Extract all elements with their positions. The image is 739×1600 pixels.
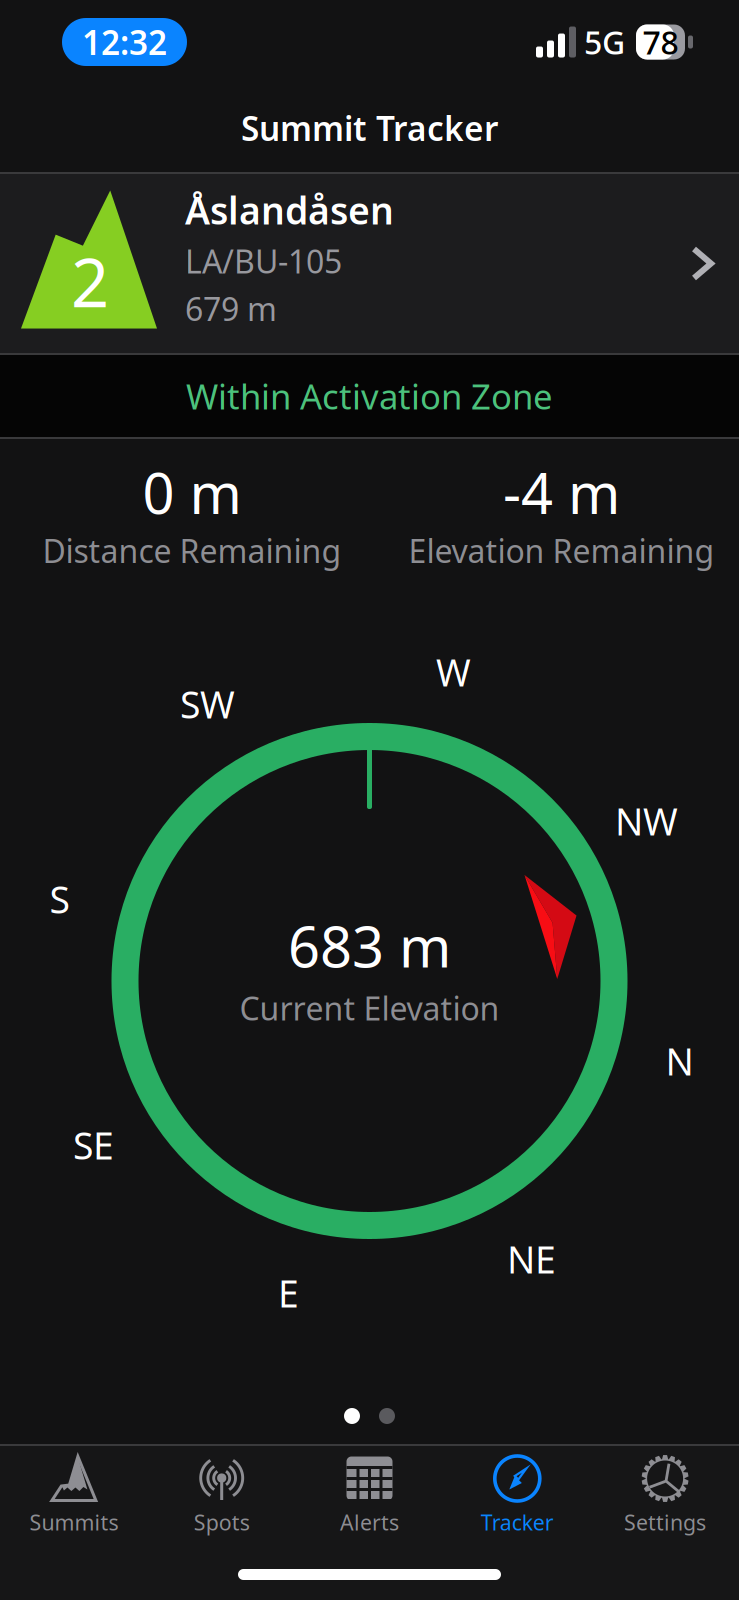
staticText: NE bbox=[507, 1234, 556, 1284]
staticText: E bbox=[278, 1268, 299, 1318]
staticText: Within Activation Zone bbox=[186, 373, 553, 419]
staticText: 0 m bbox=[142, 455, 241, 529]
staticText: Åslandåsen bbox=[185, 185, 394, 235]
staticText: -4 m bbox=[503, 455, 620, 529]
staticText: W bbox=[436, 647, 471, 697]
staticText: Current Elevation bbox=[239, 987, 499, 1029]
staticText: 5G bbox=[584, 21, 625, 63]
staticText: 78 bbox=[642, 21, 678, 63]
staticText: Tracker bbox=[481, 1508, 554, 1536]
button[interactable]: Spots bbox=[148, 1446, 296, 1549]
staticText: SW bbox=[180, 679, 235, 729]
staticText: Settings bbox=[624, 1508, 706, 1536]
staticText: LA/BU-105 bbox=[185, 240, 342, 282]
staticText: 12:32 bbox=[82, 20, 167, 64]
button[interactable]: 2 bbox=[0, 174, 739, 353]
staticText: S bbox=[49, 874, 69, 924]
button[interactable]: Summits bbox=[0, 1446, 148, 1549]
staticText: N bbox=[665, 1036, 693, 1086]
staticText: NW bbox=[615, 796, 678, 846]
button[interactable]: Tracker bbox=[443, 1446, 591, 1549]
button[interactable]: Alerts bbox=[296, 1446, 443, 1549]
staticText: Elevation Remaining bbox=[408, 529, 714, 572]
staticText: Summits bbox=[29, 1508, 118, 1536]
staticText: Alerts bbox=[340, 1508, 399, 1536]
staticText: 2 bbox=[71, 237, 109, 326]
staticText: SE bbox=[73, 1120, 114, 1170]
staticText: Spots bbox=[194, 1508, 250, 1536]
staticText: Distance Remaining bbox=[42, 529, 341, 572]
button[interactable]: Settings bbox=[591, 1446, 739, 1549]
staticText: 679 m bbox=[185, 287, 277, 330]
staticText: Summit Tracker bbox=[241, 106, 498, 150]
staticText: 683 m bbox=[288, 909, 451, 983]
